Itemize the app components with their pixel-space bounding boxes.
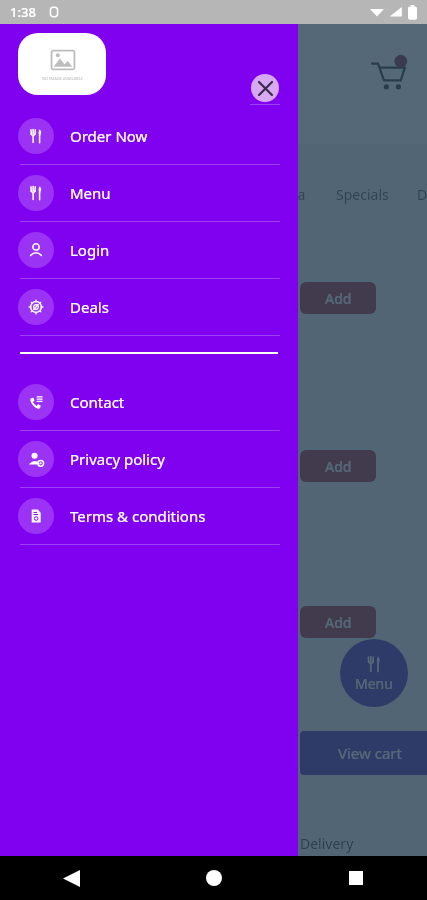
button[interactable]: Menu (340, 639, 408, 707)
staticText: Order Now (70, 126, 148, 146)
button[interactable]: Add (300, 282, 376, 314)
staticText: D (417, 185, 427, 204)
button[interactable]: Close drawer (251, 74, 279, 102)
button[interactable]: Recent apps (285, 856, 427, 900)
button[interactable]: Terms & conditions (0, 488, 298, 545)
staticText: Delivery (300, 834, 354, 853)
button[interactable]: Home (143, 856, 285, 900)
staticText: Menu (355, 674, 393, 693)
staticText: 1:38 (10, 3, 36, 21)
staticText: View cart (338, 743, 402, 763)
button[interactable]: Menu (0, 165, 298, 222)
staticText: Terms & conditions (70, 506, 206, 526)
button[interactable]: Add (300, 606, 376, 638)
button[interactable]: Back (0, 856, 143, 900)
staticText: Deals (70, 297, 109, 317)
staticText: Add (325, 457, 352, 476)
staticText: Login (70, 240, 110, 260)
staticText: Privacy policy (70, 449, 165, 469)
staticText: ra (292, 185, 306, 204)
staticText: Specials (336, 185, 389, 204)
button[interactable]: Deals (0, 279, 298, 336)
staticText: NO IMAGE AVAILABLE (42, 76, 83, 81)
button[interactable]: Add (300, 450, 376, 482)
staticText: Add (325, 289, 352, 308)
staticText: Contact (70, 392, 125, 412)
button[interactable]: Login (0, 222, 298, 279)
button[interactable]: Privacy policy (0, 431, 298, 488)
staticText: Add (325, 613, 352, 632)
button[interactable]: View cart (300, 731, 427, 775)
staticText: Menu (70, 183, 111, 203)
button[interactable]: Order Now (0, 108, 298, 165)
button[interactable]: Contact (0, 374, 298, 431)
